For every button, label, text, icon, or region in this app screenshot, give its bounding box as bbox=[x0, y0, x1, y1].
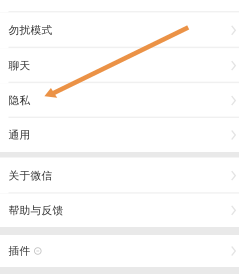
staticText: 聊天 bbox=[8, 59, 30, 72]
button[interactable]: 插件 bbox=[0, 235, 239, 267]
button[interactable]: 帮助与反馈 bbox=[0, 194, 239, 227]
staticText: 帮助与反馈 bbox=[8, 204, 63, 217]
button[interactable]: 隐私 bbox=[0, 83, 239, 118]
staticText: 通用 bbox=[8, 128, 30, 141]
staticText: 关于微信 bbox=[8, 169, 52, 182]
staticText: 隐私 bbox=[8, 94, 30, 107]
button[interactable]: 通用 bbox=[0, 118, 239, 152]
staticText: 勿扰模式 bbox=[8, 24, 52, 37]
button[interactable]: 勿扰模式 bbox=[0, 12, 239, 48]
button[interactable]: 关于微信 bbox=[0, 157, 239, 194]
button[interactable]: 聊天 bbox=[0, 48, 239, 83]
staticText: 插件 bbox=[8, 244, 30, 257]
